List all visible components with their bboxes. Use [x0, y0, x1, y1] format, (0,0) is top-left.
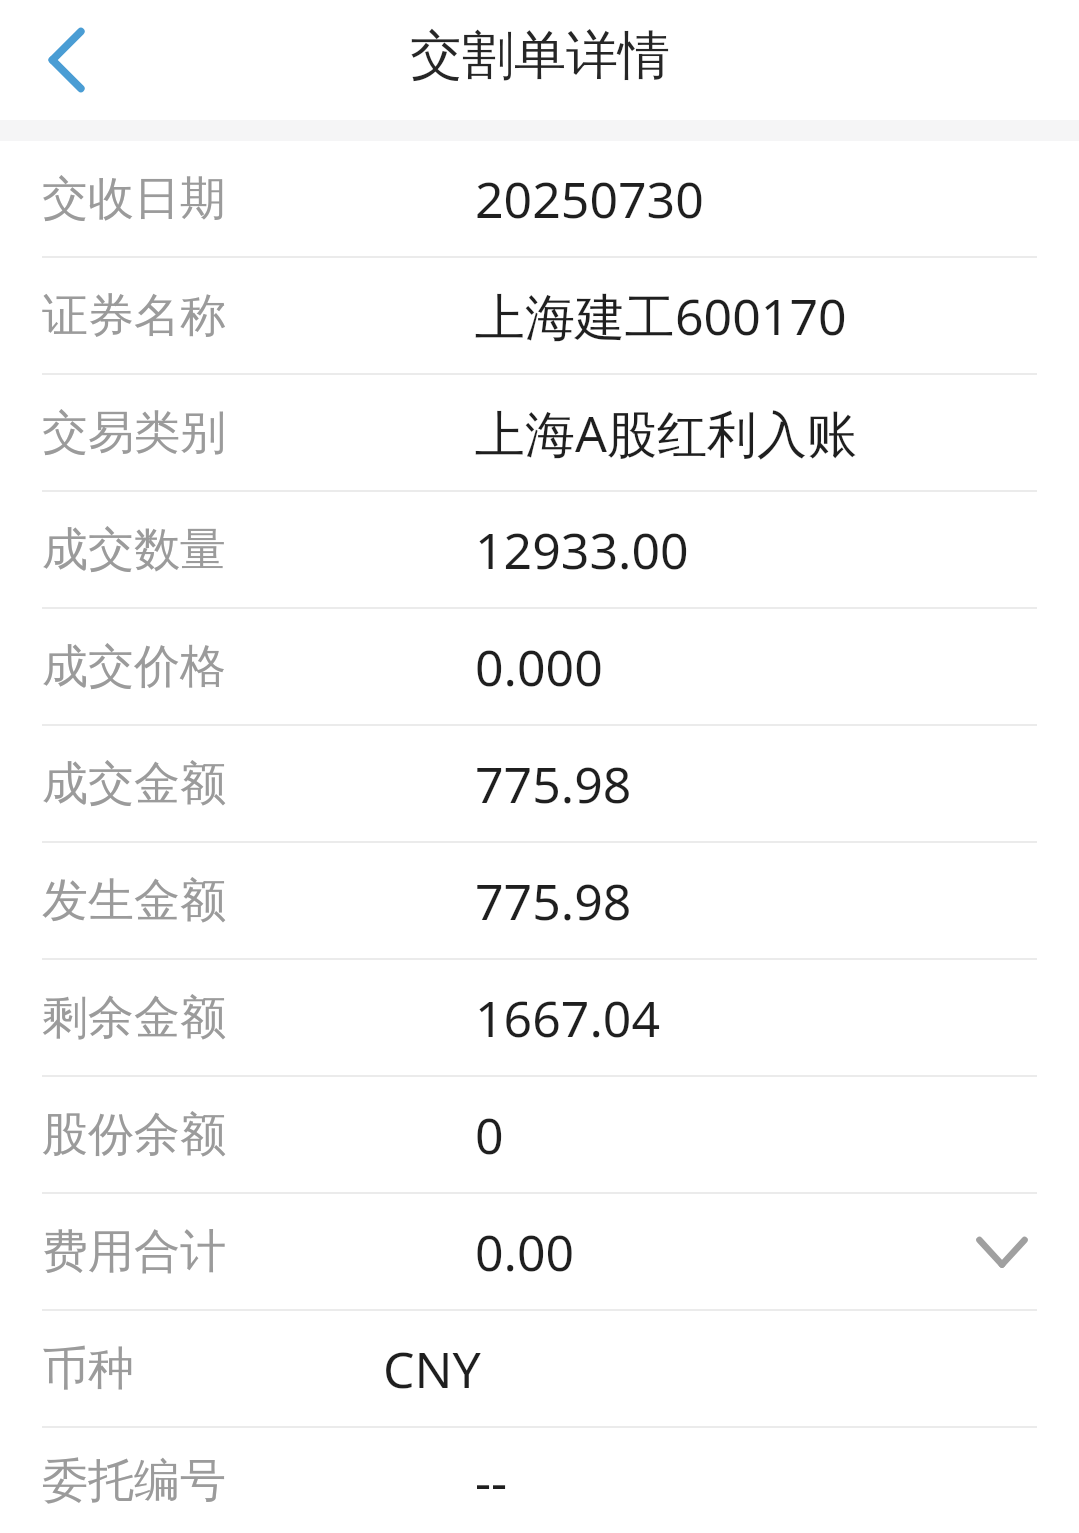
staticText: 上海建工600170 [475, 282, 847, 350]
staticText: 费用合计 [42, 1223, 226, 1281]
staticText: 币种 [42, 1340, 134, 1398]
staticText: 交易类别 [42, 404, 226, 462]
button[interactable]: 剩余金额 [0, 960, 1079, 1075]
staticText: 0 [475, 1101, 504, 1169]
button[interactable]: 成交金额 [0, 726, 1079, 841]
staticText: 成交数量 [42, 521, 226, 579]
staticText: -- [475, 1447, 508, 1515]
button[interactable]: Expand fee details [967, 1217, 1037, 1287]
staticText: 20250730 [475, 165, 704, 233]
staticText: 775.98 [475, 867, 632, 935]
button[interactable]: 交易类别 [0, 375, 1079, 490]
button[interactable]: 币种 [0, 1311, 1079, 1426]
button[interactable]: 费用合计 [0, 1194, 1079, 1309]
button[interactable]: 发生金额 [0, 843, 1079, 958]
staticText: 上海A股红利入账 [475, 399, 857, 467]
button[interactable]: 成交数量 [0, 492, 1079, 607]
staticText: 成交价格 [42, 638, 226, 696]
staticText: 股份余额 [42, 1106, 226, 1164]
staticText: 剩余金额 [42, 989, 226, 1047]
staticText: 775.98 [475, 750, 632, 818]
button[interactable]: 委托编号 [0, 1428, 1079, 1533]
staticText: 0.00 [475, 1218, 575, 1286]
staticText: 成交金额 [42, 755, 226, 813]
button[interactable]: 交收日期 [0, 141, 1079, 256]
staticText: CNY [383, 1335, 481, 1403]
staticText: 委托编号 [42, 1452, 226, 1510]
staticText: 12933.00 [475, 516, 689, 584]
staticText: 0.000 [475, 633, 603, 701]
button[interactable]: 证券名称 [0, 258, 1079, 373]
button[interactable]: 股份余额 [0, 1077, 1079, 1192]
staticText: 交收日期 [42, 170, 226, 228]
staticText: 证券名称 [42, 287, 226, 345]
button[interactable]: 成交价格 [0, 609, 1079, 724]
button[interactable]: Back [0, 0, 136, 120]
staticText: 1667.04 [475, 984, 660, 1052]
staticText: 发生金额 [42, 872, 226, 930]
staticText: 交割单详情 [410, 23, 670, 89]
